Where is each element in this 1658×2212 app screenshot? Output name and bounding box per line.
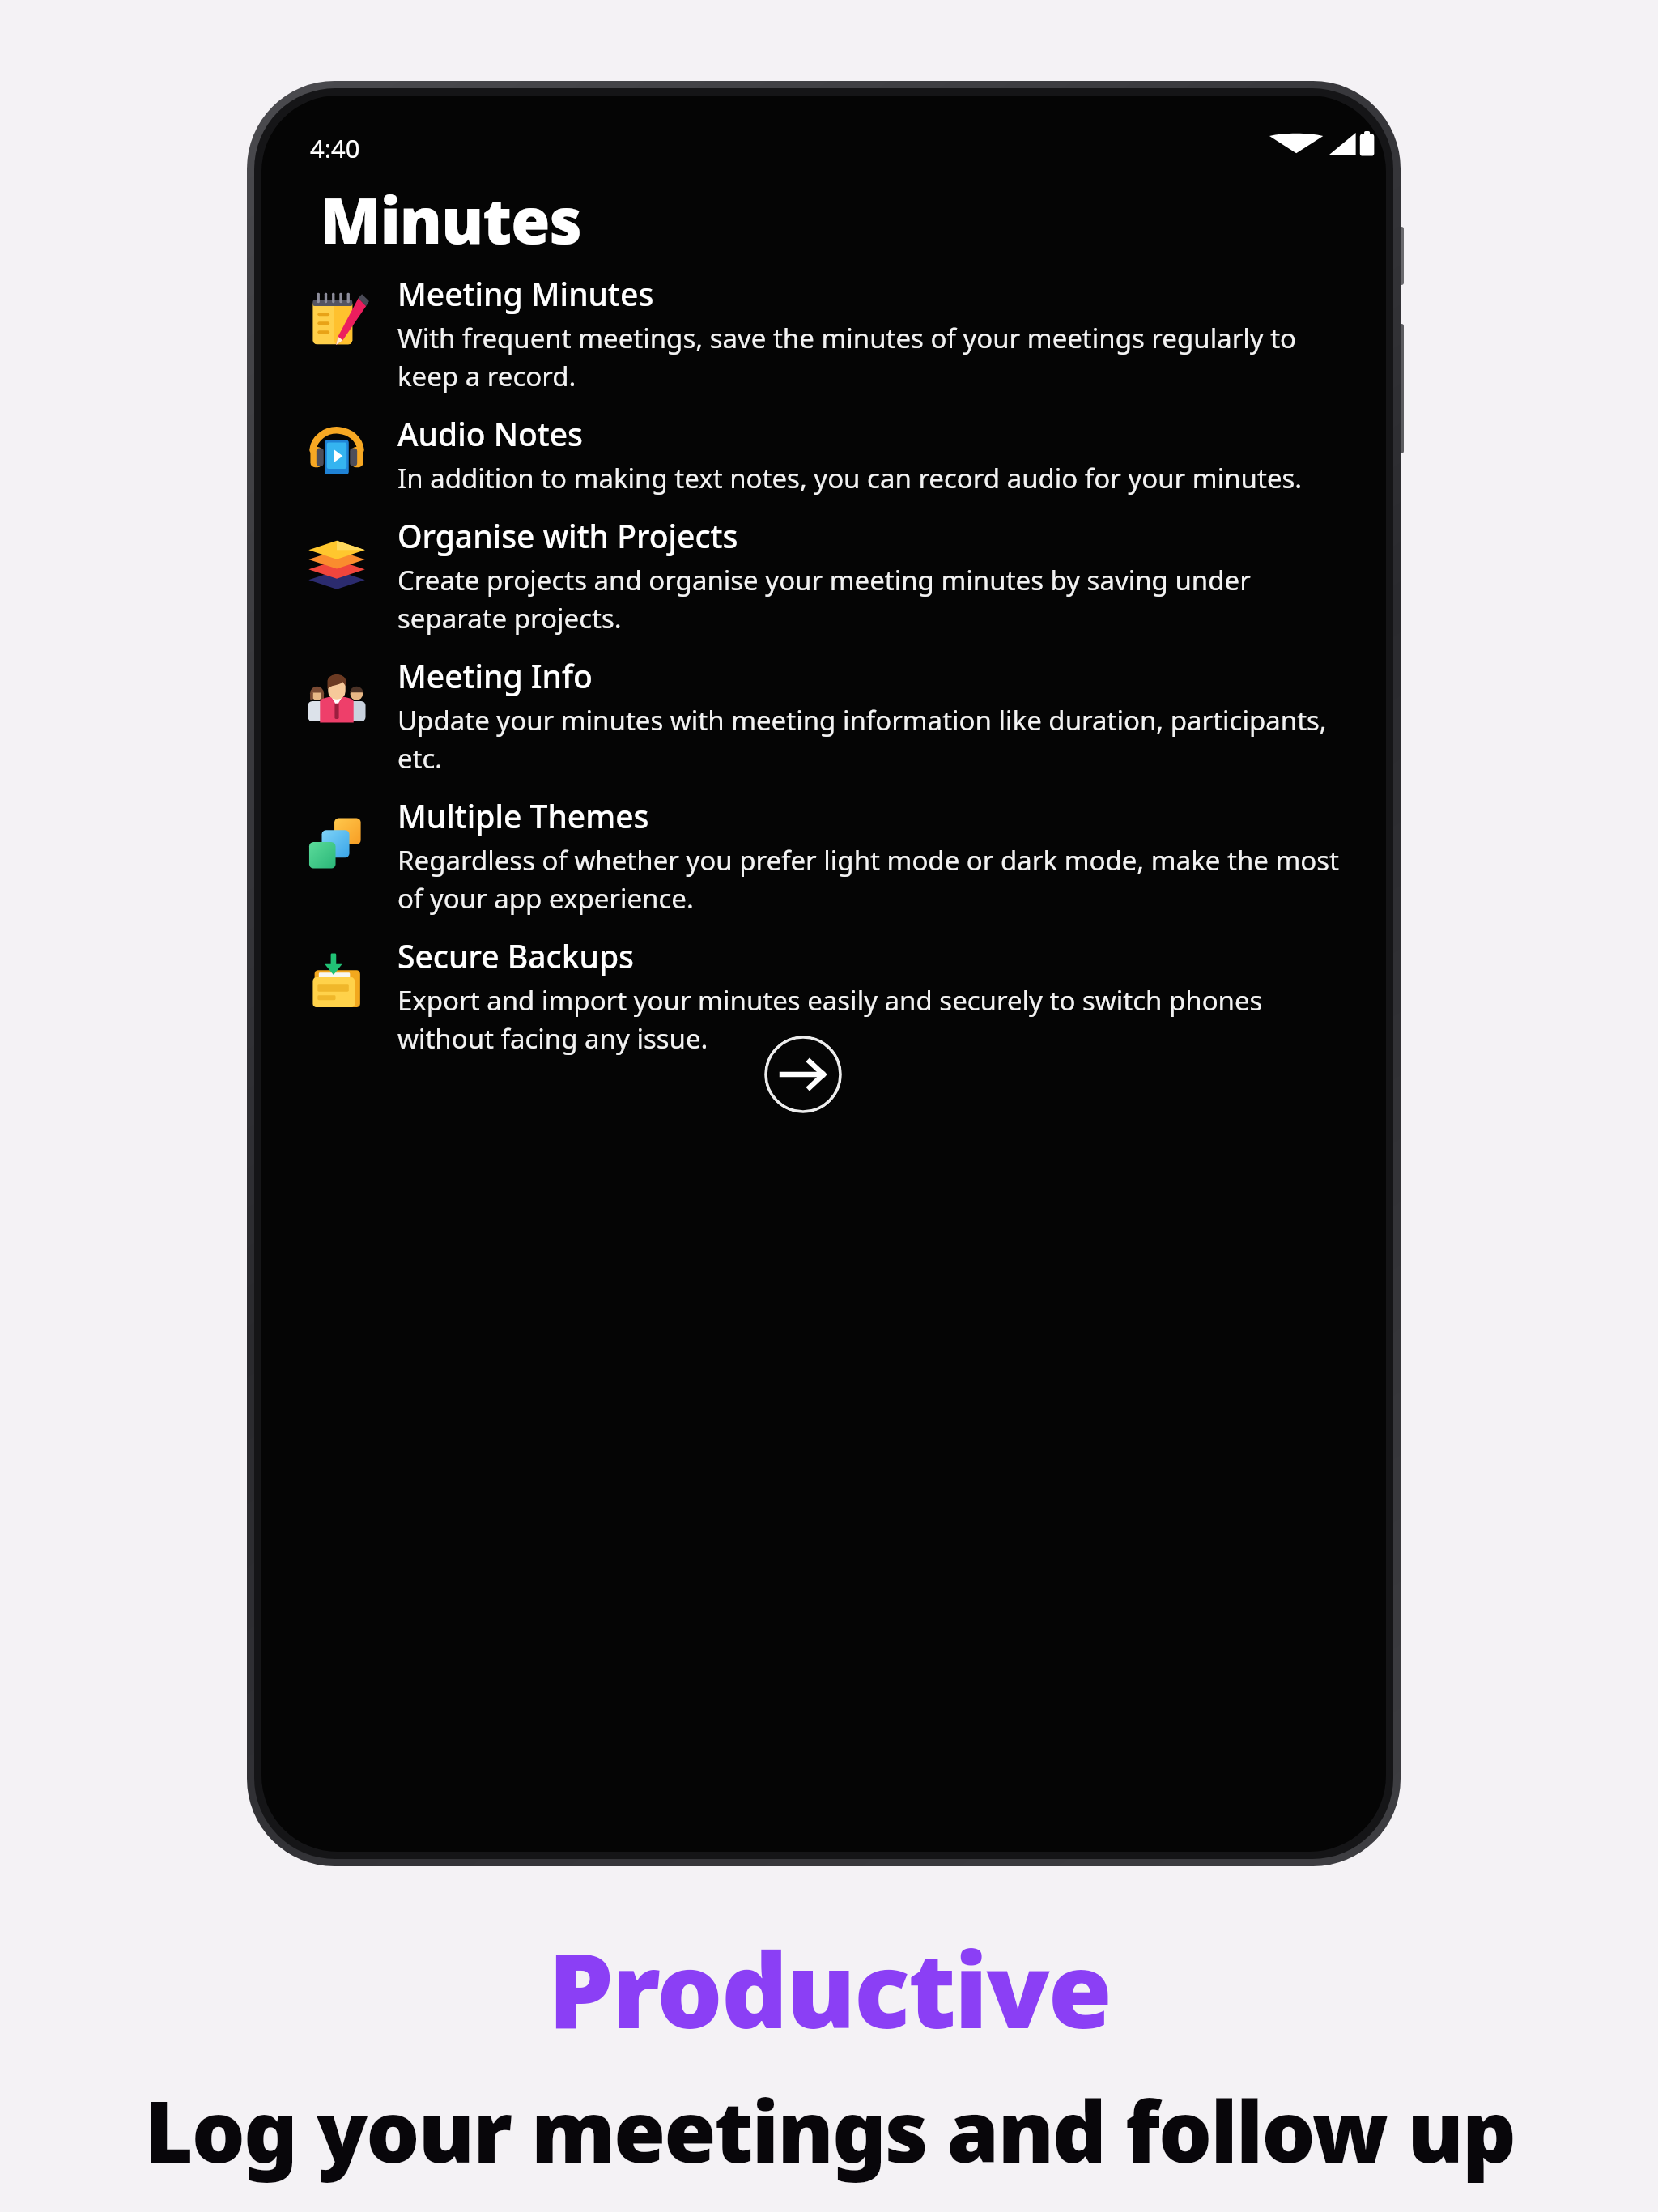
button[interactable]: Meeting Minutes — [261, 267, 1386, 407]
staticText: Export and import your minutes easily an… — [397, 982, 1344, 1057]
staticText: Minutes — [320, 177, 581, 262]
staticText: Create projects and organise your meetin… — [397, 562, 1344, 636]
staticText: Audio Notes — [397, 412, 584, 455]
button[interactable]: Meeting Info — [261, 649, 1386, 789]
button[interactable]: Audio Notes — [261, 407, 1386, 509]
button[interactable]: Next — [764, 1036, 842, 1113]
staticText: Organise with Projects — [397, 514, 738, 557]
staticText: Meeting Info — [397, 654, 593, 697]
staticText: 4:40 — [310, 131, 360, 165]
staticText: With frequent meetings, save the minutes… — [397, 320, 1344, 394]
staticText: Productive — [548, 1917, 1111, 2058]
staticText: Meeting Minutes — [397, 272, 654, 315]
button[interactable]: Multiple Themes — [261, 789, 1386, 929]
staticText: Multiple Themes — [397, 794, 649, 837]
staticText: Secure Backups — [397, 934, 635, 977]
staticText: In addition to making text notes, you ca… — [397, 460, 1303, 496]
button[interactable]: Secure Backups — [261, 929, 1386, 1070]
button[interactable]: Organise with Projects — [261, 509, 1386, 649]
staticText: Regardless of whether you prefer light m… — [397, 842, 1344, 917]
staticText: Log your meetings and follow up — [144, 2073, 1515, 2188]
staticText: Update your minutes with meeting informa… — [397, 702, 1344, 776]
